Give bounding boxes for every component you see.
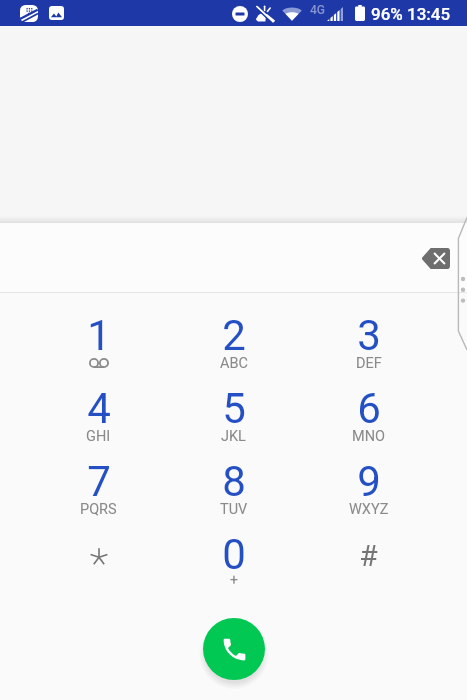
button[interactable]: 0 bbox=[166, 530, 301, 603]
staticText: 13:45 bbox=[407, 4, 451, 24]
button[interactable]: 4 bbox=[31, 384, 166, 457]
staticText: + bbox=[230, 572, 238, 588]
staticText: 7 bbox=[87, 457, 111, 506]
staticText: TUV bbox=[220, 501, 248, 518]
staticText: 4G bbox=[310, 3, 325, 17]
staticText: 8 bbox=[222, 457, 246, 506]
button[interactable]: 5 bbox=[166, 384, 301, 457]
button[interactable]: 1 bbox=[31, 311, 166, 384]
staticText: GHI bbox=[86, 428, 111, 445]
staticText: WXYZ bbox=[349, 501, 389, 518]
button[interactable]: Call bbox=[203, 618, 265, 680]
button[interactable]: 3 bbox=[301, 311, 436, 384]
staticText: 4 bbox=[87, 384, 111, 433]
staticText: 2 bbox=[222, 311, 246, 360]
staticText: 5 bbox=[222, 384, 246, 433]
staticText: DEF bbox=[356, 355, 382, 372]
staticText: 6 bbox=[357, 384, 381, 433]
staticText: 96% bbox=[371, 4, 403, 24]
staticText: ABC bbox=[220, 355, 248, 372]
button[interactable]: 2 bbox=[166, 311, 301, 384]
button[interactable] bbox=[31, 530, 166, 603]
staticText: # bbox=[359, 538, 378, 573]
staticText: 1 bbox=[87, 311, 111, 360]
button[interactable]: Backspace bbox=[413, 239, 459, 277]
button[interactable]: 7 bbox=[31, 457, 166, 530]
button[interactable]: 6 bbox=[301, 384, 436, 457]
staticText: PQRS bbox=[80, 501, 117, 518]
staticText: 9 bbox=[357, 457, 381, 506]
staticText: MNO bbox=[352, 428, 385, 445]
button[interactable]: 9 bbox=[301, 457, 436, 530]
staticText: 0 bbox=[222, 530, 246, 579]
button[interactable]: 8 bbox=[166, 457, 301, 530]
staticText: 3 bbox=[357, 311, 381, 360]
button[interactable]: # bbox=[301, 530, 436, 603]
staticText: JKL bbox=[221, 428, 246, 445]
